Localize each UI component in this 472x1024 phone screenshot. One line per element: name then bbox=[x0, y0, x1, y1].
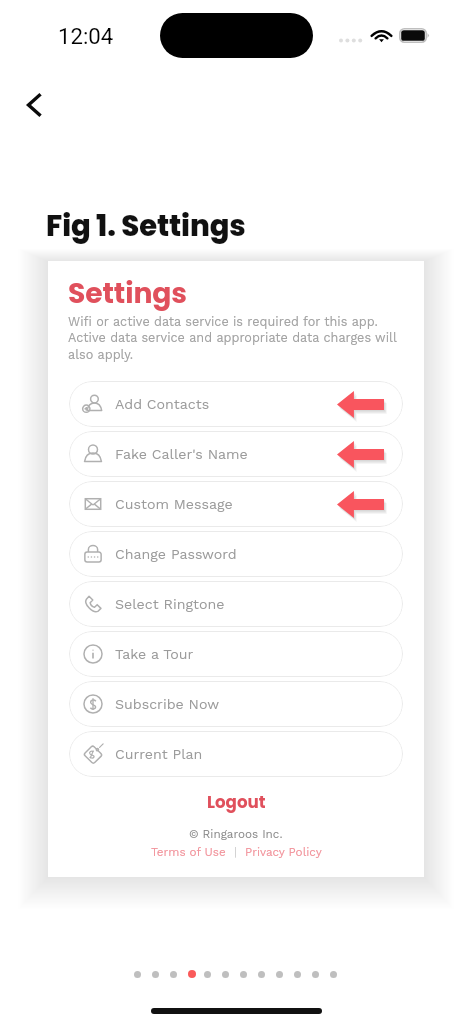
staticText: Take a Tour bbox=[115, 646, 194, 663]
staticText: Current Plan bbox=[115, 746, 203, 763]
button[interactable]: Page 9 bbox=[276, 966, 294, 982]
button[interactable]: Back bbox=[13, 85, 53, 125]
staticText: Change Password bbox=[115, 546, 237, 563]
button[interactable]: Page 2 bbox=[152, 966, 170, 982]
button[interactable]: Change Password bbox=[69, 531, 403, 577]
button[interactable]: Terms of Use bbox=[151, 845, 226, 859]
button[interactable]: Take a Tour bbox=[69, 631, 403, 677]
button[interactable]: Custom Message bbox=[69, 481, 403, 527]
button[interactable]: Page 1 bbox=[134, 966, 152, 982]
staticText: 12:04 bbox=[58, 23, 114, 49]
button[interactable]: Add Contacts bbox=[69, 381, 403, 427]
button[interactable]: Page 7 bbox=[240, 966, 258, 982]
button[interactable]: Page 11 bbox=[312, 966, 330, 982]
staticText: Settings bbox=[68, 273, 187, 312]
staticText: © Ringaroos Inc. bbox=[189, 827, 283, 841]
button[interactable]: Current Plan bbox=[69, 731, 403, 777]
staticText: Add Contacts bbox=[115, 396, 210, 413]
staticText: Custom Message bbox=[115, 496, 233, 513]
button[interactable]: Subscribe Now bbox=[69, 681, 403, 727]
staticText: Fake Caller's Name bbox=[115, 446, 248, 463]
button[interactable]: Page 10 bbox=[294, 966, 312, 982]
button[interactable]: Privacy Policy bbox=[245, 845, 322, 859]
button[interactable]: Page 8 bbox=[258, 966, 276, 982]
staticText: Subscribe Now bbox=[115, 696, 220, 713]
button[interactable]: Page 3 bbox=[170, 966, 188, 982]
button[interactable]: Select Ringtone bbox=[69, 581, 403, 627]
button[interactable]: Logout bbox=[195, 787, 278, 816]
button[interactable]: Page 12 bbox=[330, 966, 348, 982]
button[interactable]: Page 5 bbox=[204, 966, 222, 982]
staticText: Select Ringtone bbox=[115, 596, 225, 613]
button[interactable]: Fake Caller's Name bbox=[69, 431, 403, 477]
button[interactable]: Page 4 bbox=[188, 966, 204, 982]
staticText: Fig 1. Settings bbox=[46, 206, 246, 247]
staticText: Logout bbox=[207, 790, 266, 813]
staticText: | bbox=[226, 845, 245, 859]
staticText: Terms of Use bbox=[151, 845, 226, 859]
staticText: Privacy Policy bbox=[245, 845, 322, 859]
staticText: Wifi or active data service is required … bbox=[68, 314, 397, 362]
button[interactable]: Page 6 bbox=[222, 966, 240, 982]
